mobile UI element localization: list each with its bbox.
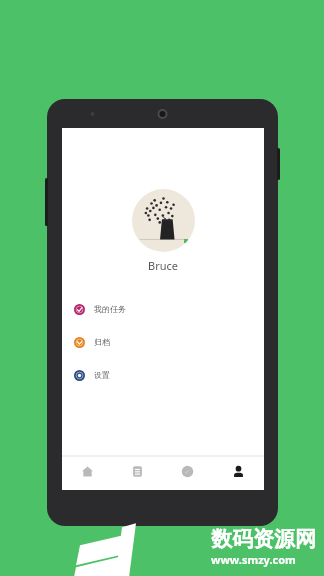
button[interactable]: 我的任务 — [62, 299, 264, 319]
staticText: 归档 — [94, 337, 110, 347]
staticText: 数码资源网 — [211, 526, 316, 552]
button[interactable]: 归档 — [62, 332, 264, 352]
staticText: www.smzy.com — [211, 552, 296, 567]
button[interactable]: 设置 — [62, 365, 264, 385]
button[interactable]: Compose — [162, 456, 213, 486]
button[interactable]: Home — [62, 456, 112, 486]
staticText: 设置 — [94, 370, 110, 380]
button[interactable]: Profile — [213, 456, 264, 486]
button[interactable]: Notes — [112, 456, 162, 486]
staticText: 我的任务 — [94, 304, 126, 314]
button[interactable]: Profile photo — [132, 189, 195, 252]
staticText: Bruce — [62, 258, 264, 273]
